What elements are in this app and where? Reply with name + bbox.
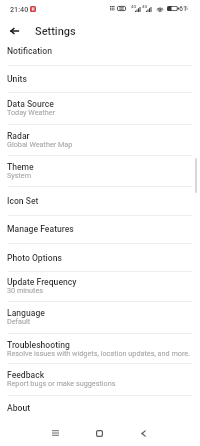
button[interactable]: Home	[88, 422, 110, 444]
button[interactable]: About	[0, 395, 200, 421]
button[interactable]: Radar	[0, 124, 200, 155]
button[interactable]: Troubleshooting	[0, 333, 200, 364]
button[interactable]: Manage Features	[0, 215, 200, 243]
staticText: 30 minutes	[7, 286, 44, 294]
button[interactable]: Feedback	[0, 363, 200, 395]
staticText: Units	[7, 74, 27, 84]
staticText: Radar	[7, 131, 30, 141]
staticText: 61	[179, 5, 187, 13]
staticText: About	[7, 403, 31, 413]
button[interactable]: Icon Set	[0, 186, 200, 215]
staticText: Update Frequency	[7, 277, 77, 287]
staticText: Manage Features	[7, 224, 74, 234]
staticText: 4G	[142, 4, 148, 9]
button[interactable]: Back	[5, 22, 23, 40]
button[interactable]: Notification	[0, 37, 200, 65]
staticText: Settings	[35, 25, 76, 38]
button[interactable]: Update Frequency	[0, 271, 200, 301]
button[interactable]: Back	[132, 422, 154, 444]
staticText: Default	[7, 317, 31, 325]
staticText: Notification	[7, 46, 52, 56]
staticText: Report bugs or make suggestions	[7, 379, 116, 387]
button[interactable]: Theme	[0, 155, 200, 187]
staticText: Language	[7, 308, 45, 318]
staticText: Global Weather Map	[7, 140, 73, 148]
button[interactable]: Recents	[44, 422, 66, 444]
button[interactable]: Data Source	[0, 92, 200, 124]
staticText: 21:40	[10, 5, 29, 13]
staticText: %	[185, 6, 189, 11]
staticText: Data Source	[7, 99, 54, 109]
staticText: Resolve issues with widgets, location up…	[7, 349, 191, 357]
staticText: Theme	[7, 162, 34, 172]
button[interactable]: Photo Options	[0, 243, 200, 272]
staticText: Feedback	[7, 370, 45, 380]
staticText: Photo Options	[7, 253, 62, 263]
button[interactable]: Units	[0, 65, 200, 92]
staticText: 4G	[131, 4, 137, 9]
staticText: Icon Set	[7, 196, 39, 206]
staticText: System	[7, 171, 32, 179]
staticText: Troubleshooting	[7, 340, 70, 350]
button[interactable]: Language	[0, 301, 200, 333]
staticText: Today Weather	[7, 108, 56, 116]
